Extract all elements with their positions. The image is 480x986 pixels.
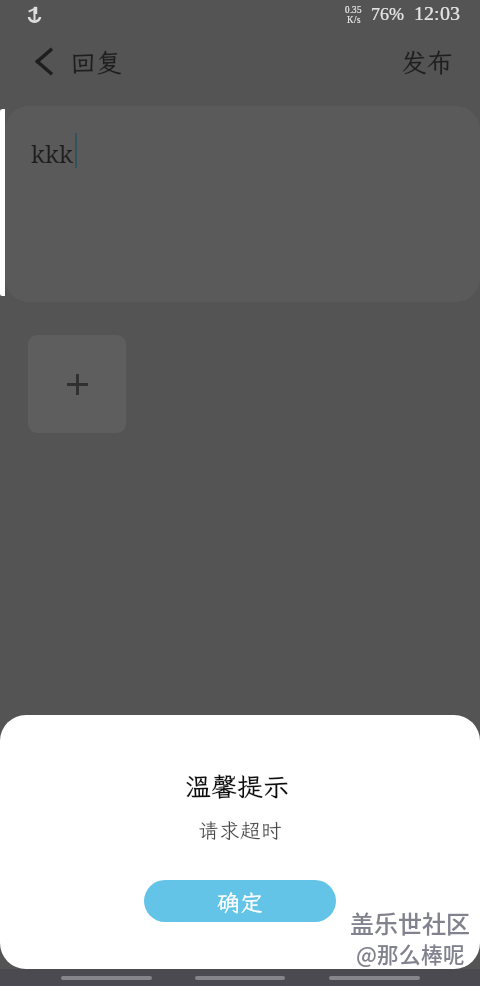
- button[interactable]: Add image: [28, 335, 126, 433]
- staticText: kkk: [31, 137, 74, 170]
- button[interactable]: Home: [195, 976, 285, 980]
- button[interactable]: [384, 39, 468, 85]
- button[interactable]: Back: [20, 39, 128, 85]
- button[interactable]: Back: [329, 976, 420, 980]
- other: Back: [31, 47, 60, 76]
- other: Status icon: [28, 6, 41, 22]
- button[interactable]: [144, 880, 336, 922]
- button[interactable]: Recent apps: [61, 976, 152, 980]
